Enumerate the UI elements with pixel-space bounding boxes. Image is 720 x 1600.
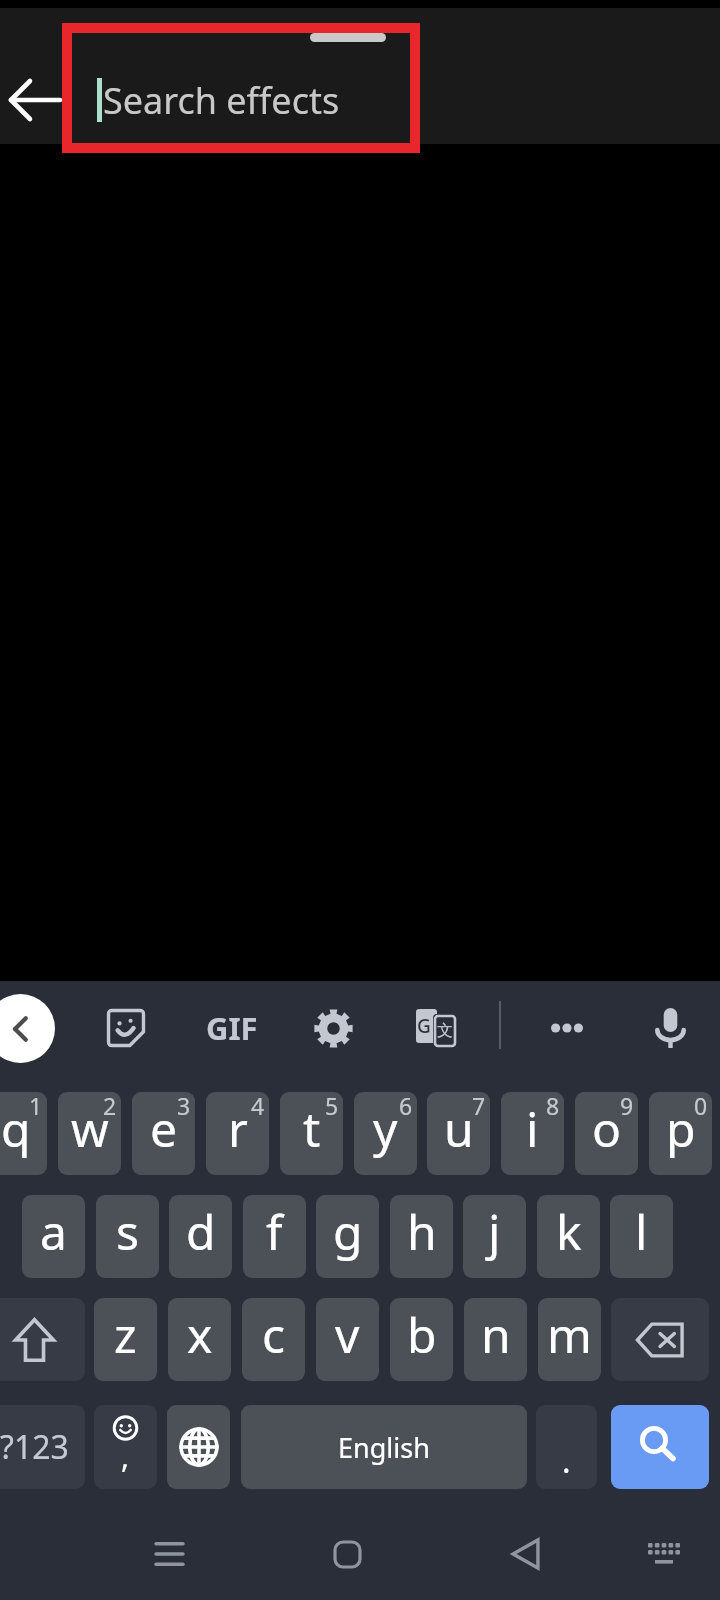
button[interactable]: Navigate up: [0, 56, 68, 144]
staticText: n: [481, 1302, 511, 1367]
button[interactable]: r: [206, 1092, 269, 1175]
staticText: 6: [399, 1092, 413, 1121]
button[interactable]: l: [610, 1195, 673, 1278]
staticText: 1: [29, 1092, 43, 1121]
staticText: GIF: [206, 1007, 258, 1049]
button[interactable]: c: [242, 1298, 305, 1381]
button[interactable]: m: [538, 1298, 601, 1381]
staticText: English: [338, 1429, 430, 1466]
button[interactable]: Shift: [0, 1298, 85, 1381]
staticText: u: [444, 1096, 474, 1161]
button[interactable]: g: [316, 1195, 379, 1278]
button[interactable]: h: [390, 1195, 453, 1278]
staticText: i: [526, 1096, 539, 1161]
button[interactable]: Change language: [167, 1405, 230, 1489]
staticText: 7: [472, 1092, 486, 1121]
button[interactable]: Back: [480, 1509, 570, 1599]
button[interactable]: s: [96, 1195, 159, 1278]
button[interactable]: o: [575, 1092, 638, 1175]
staticText: q: [1, 1096, 31, 1161]
button[interactable]: v: [316, 1298, 379, 1381]
staticText: 8: [546, 1092, 560, 1121]
button[interactable]: e: [132, 1092, 195, 1175]
staticText: k: [556, 1199, 582, 1264]
button[interactable]: a: [22, 1195, 85, 1278]
staticText: 5: [325, 1092, 339, 1121]
button[interactable]: y: [354, 1092, 417, 1175]
staticText: j: [488, 1199, 501, 1264]
button[interactable]: GIF: [186, 982, 278, 1074]
button[interactable]: j: [463, 1195, 526, 1278]
staticText: w: [71, 1096, 109, 1161]
button[interactable]: Stickers: [80, 982, 172, 1074]
button[interactable]: Emoji: [94, 1405, 157, 1489]
staticText: Search effects: [103, 76, 340, 125]
button[interactable]: q: [0, 1092, 47, 1175]
staticText: r: [228, 1096, 248, 1161]
button[interactable]: z: [94, 1298, 157, 1381]
button[interactable]: b: [390, 1298, 453, 1381]
staticText: l: [635, 1199, 648, 1264]
button[interactable]: Symbols: [0, 1405, 85, 1489]
button[interactable]: i: [501, 1092, 564, 1175]
button[interactable]: More options: [521, 982, 613, 1074]
staticText: f: [266, 1199, 283, 1264]
staticText: ,: [121, 1436, 130, 1477]
staticText: m: [547, 1302, 592, 1367]
staticText: .: [562, 1439, 571, 1483]
staticText: h: [407, 1199, 437, 1264]
button[interactable]: Hide keyboard: [619, 1509, 709, 1599]
staticText: 2: [103, 1092, 117, 1121]
button[interactable]: Home: [302, 1509, 392, 1599]
button[interactable]: English: [241, 1405, 527, 1489]
button[interactable]: x: [168, 1298, 231, 1381]
staticText: g: [333, 1199, 363, 1264]
staticText: d: [186, 1199, 216, 1264]
staticText: s: [116, 1199, 139, 1264]
staticText: 文: [437, 1021, 453, 1041]
button[interactable]: t: [280, 1092, 343, 1175]
staticText: G: [417, 1013, 431, 1039]
staticText: e: [150, 1096, 178, 1161]
button[interactable]: w: [58, 1092, 121, 1175]
button[interactable]: u: [427, 1092, 490, 1175]
button[interactable]: Collapse: [0, 982, 66, 1074]
staticText: x: [187, 1302, 213, 1367]
button[interactable]: Search effects: [72, 56, 720, 144]
staticText: p: [666, 1096, 696, 1161]
button[interactable]: f: [243, 1195, 306, 1278]
button[interactable]: Voice input: [624, 982, 716, 1074]
staticText: 0: [694, 1092, 708, 1121]
button[interactable]: n: [464, 1298, 527, 1381]
staticText: a: [40, 1199, 67, 1264]
button[interactable]: p: [649, 1092, 712, 1175]
button[interactable]: Backspace: [611, 1298, 709, 1381]
staticText: y: [373, 1096, 398, 1161]
button[interactable]: Search: [611, 1405, 709, 1489]
staticText: 3: [177, 1092, 191, 1121]
staticText: b: [407, 1302, 437, 1367]
button[interactable]: Settings: [287, 982, 379, 1074]
staticText: 9: [620, 1092, 634, 1121]
button[interactable]: d: [169, 1195, 232, 1278]
staticText: v: [335, 1302, 360, 1367]
staticText: t: [303, 1096, 321, 1161]
staticText: c: [262, 1302, 286, 1367]
button[interactable]: Translate: [390, 982, 482, 1074]
staticText: ?123: [0, 1425, 69, 1469]
staticText: o: [592, 1096, 622, 1161]
staticText: z: [114, 1302, 137, 1367]
button[interactable]: .: [536, 1405, 597, 1489]
button[interactable]: Recent apps: [124, 1509, 214, 1599]
button[interactable]: k: [537, 1195, 600, 1278]
staticText: 4: [251, 1092, 265, 1121]
